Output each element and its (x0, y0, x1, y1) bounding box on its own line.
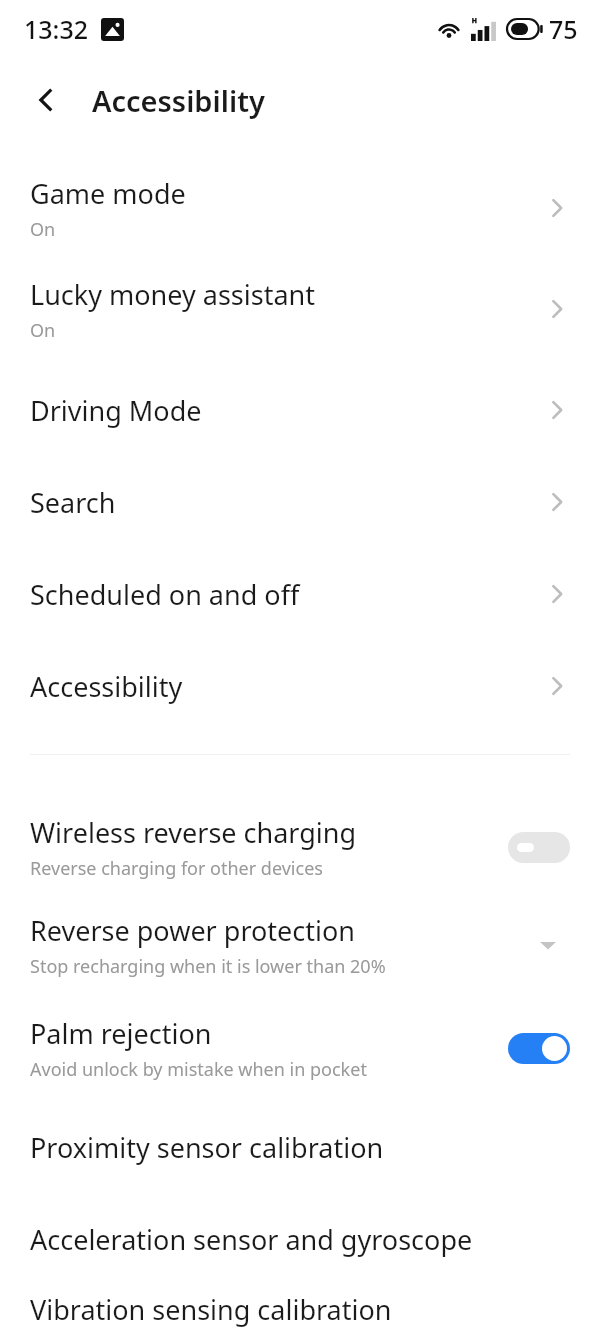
staticText: Reverse charging for other devices (30, 856, 323, 881)
button[interactable]: Scheduled on and off (0, 548, 600, 640)
staticText: Vibration sensing calibration (30, 1291, 392, 1328)
button[interactable]: Driving Mode (0, 364, 600, 456)
staticText: Accessibility (92, 81, 265, 120)
button[interactable]: Proximity sensor calibration (0, 1101, 600, 1193)
button[interactable]: Search (0, 456, 600, 548)
button[interactable]: Expand reverse power protection (526, 923, 570, 967)
staticText: Acceleration sensor and gyroscope (30, 1221, 473, 1258)
staticText: 13:32 (24, 12, 89, 46)
button[interactable]: Wireless reverse charging (508, 832, 570, 863)
button[interactable]: Palm rejection (508, 1033, 570, 1064)
staticText: Proximity sensor calibration (30, 1129, 384, 1166)
staticText: Driving Mode (30, 392, 202, 429)
staticText: Search (30, 484, 116, 521)
button[interactable]: Back (22, 76, 70, 124)
button[interactable]: Wireless reverse charging (0, 799, 600, 895)
staticText: Reverse power protection (30, 912, 355, 949)
button[interactable]: Vibration sensing calibration (0, 1285, 600, 1333)
staticText: Avoid unlock by mistake when in pocket (30, 1057, 367, 1082)
button[interactable]: Game mode (0, 162, 600, 254)
button[interactable]: Reverse power protection (0, 895, 600, 995)
staticText: Palm rejection (30, 1015, 212, 1052)
staticText: Game mode (30, 175, 186, 212)
button[interactable]: Accessibility (0, 640, 600, 732)
staticText: Accessibility (30, 668, 183, 705)
staticText: Wireless reverse charging (30, 814, 357, 851)
staticText: Lucky money assistant (30, 276, 315, 313)
button[interactable]: Acceleration sensor and gyroscope (0, 1193, 600, 1285)
staticText: 75 (549, 12, 578, 46)
staticText: Scheduled on and off (30, 576, 300, 613)
staticText: On (30, 318, 56, 343)
staticText: Stop recharging when it is lower than 20… (30, 954, 386, 979)
button[interactable]: Palm rejection (0, 995, 600, 1101)
staticText: On (30, 217, 56, 242)
button[interactable]: Lucky money assistant (0, 254, 600, 364)
